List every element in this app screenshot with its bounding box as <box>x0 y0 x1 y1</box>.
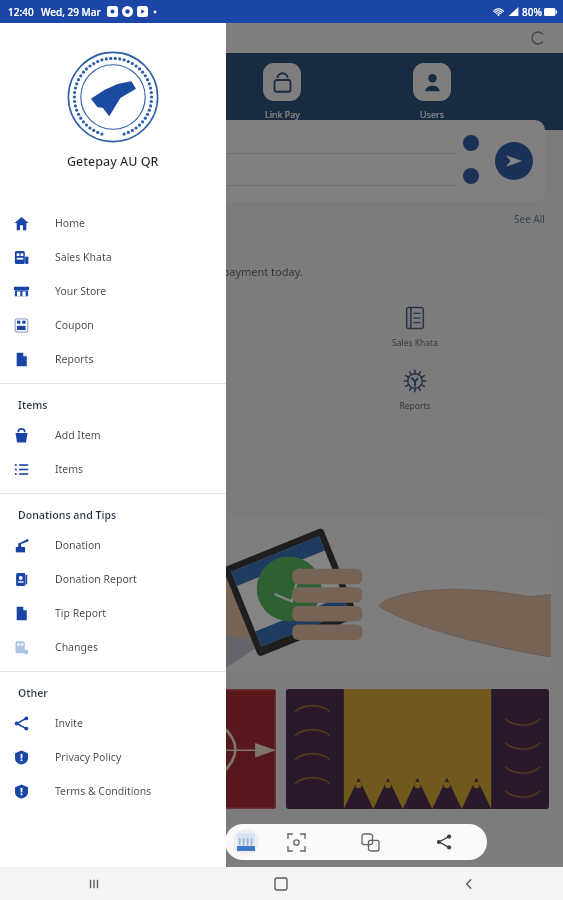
button[interactable] <box>286 689 549 809</box>
button[interactable]: Back <box>375 867 563 900</box>
button[interactable]: Reports <box>0 342 226 376</box>
staticText: Donation Report <box>55 572 137 586</box>
staticText: Items <box>18 398 48 412</box>
staticText: Add Item <box>55 428 101 442</box>
staticText: Items <box>55 462 84 476</box>
staticText: Wed, 29 Mar <box>41 5 101 19</box>
button[interactable]: Shree Ram <box>14 689 276 809</box>
button[interactable]: yments links and <box>12 516 551 671</box>
staticText: Invite <box>55 716 83 730</box>
staticText: You haven't received any payment today. <box>92 264 303 279</box>
staticText: Terms & Conditions <box>55 784 152 798</box>
staticText: Tip Report <box>55 606 107 620</box>
button[interactable]: Contacts <box>463 135 479 151</box>
button[interactable]: Lens <box>259 824 333 860</box>
button[interactable]: Link Pay <box>255 63 309 120</box>
staticText: Reports <box>55 352 94 366</box>
button[interactable]: Send <box>495 142 533 180</box>
button[interactable]: Preview <box>233 829 259 855</box>
staticText: Home <box>55 216 85 230</box>
button[interactable]: Terms & Conditions <box>0 774 226 808</box>
button[interactable]: Changes <box>0 630 226 664</box>
button[interactable]: CashBack <box>14 431 281 494</box>
button[interactable]: Items <box>0 452 226 486</box>
staticText: Sales Khata <box>392 337 438 349</box>
staticText: Changes <box>55 640 98 654</box>
staticText: See All <box>514 212 545 226</box>
button[interactable]: Sales Khata <box>281 305 549 368</box>
staticText: and, ecommerce , UPI etc. <box>16 608 114 619</box>
button[interactable]: Coupon <box>0 308 226 342</box>
button[interactable]: Payment <box>104 63 158 120</box>
staticText: Navami <box>22 745 80 765</box>
staticText: Your Store <box>55 284 107 298</box>
staticText: Reports <box>399 400 431 412</box>
staticText: Payment <box>112 108 150 120</box>
button[interactable]: Your Store <box>0 274 226 308</box>
button[interactable]: Greetings <box>14 305 281 368</box>
button[interactable]: Add Item <box>0 418 226 452</box>
staticText: Other <box>18 686 48 700</box>
button[interactable]: Recents <box>0 867 187 900</box>
button[interactable]: Refresh <box>527 27 549 49</box>
staticText: Privacy Policy <box>55 750 122 764</box>
staticText: Users <box>420 108 444 120</box>
button[interactable]: Home <box>0 206 226 240</box>
button[interactable]: Home <box>187 867 375 900</box>
button[interactable]: Users <box>405 63 459 120</box>
staticText: Coupon <box>55 318 94 332</box>
button[interactable]: Translate <box>333 824 407 860</box>
staticText: yments links and <box>20 532 182 558</box>
staticText: Donations and Tips <box>18 508 117 522</box>
button[interactable]: Tip Report <box>0 596 226 630</box>
button[interactable]: Share <box>407 824 481 860</box>
button[interactable]: Privacy Policy <box>0 740 226 774</box>
button[interactable]: Donation Report <box>0 562 226 596</box>
staticText: 12:40 <box>8 5 34 19</box>
button[interactable]: Reports <box>281 368 549 431</box>
button[interactable]: Donation <box>0 528 226 562</box>
button[interactable]: Sales Khata <box>0 240 226 274</box>
button[interactable]: Employee <box>14 368 281 431</box>
staticText: Sales Khata <box>55 250 112 264</box>
button[interactable]: Invite <box>0 706 226 740</box>
staticText: Donation <box>55 538 101 552</box>
staticText: Link Pay <box>265 108 300 120</box>
staticText: 80% <box>522 5 542 19</box>
staticText: Getepay AU QR <box>67 153 159 170</box>
